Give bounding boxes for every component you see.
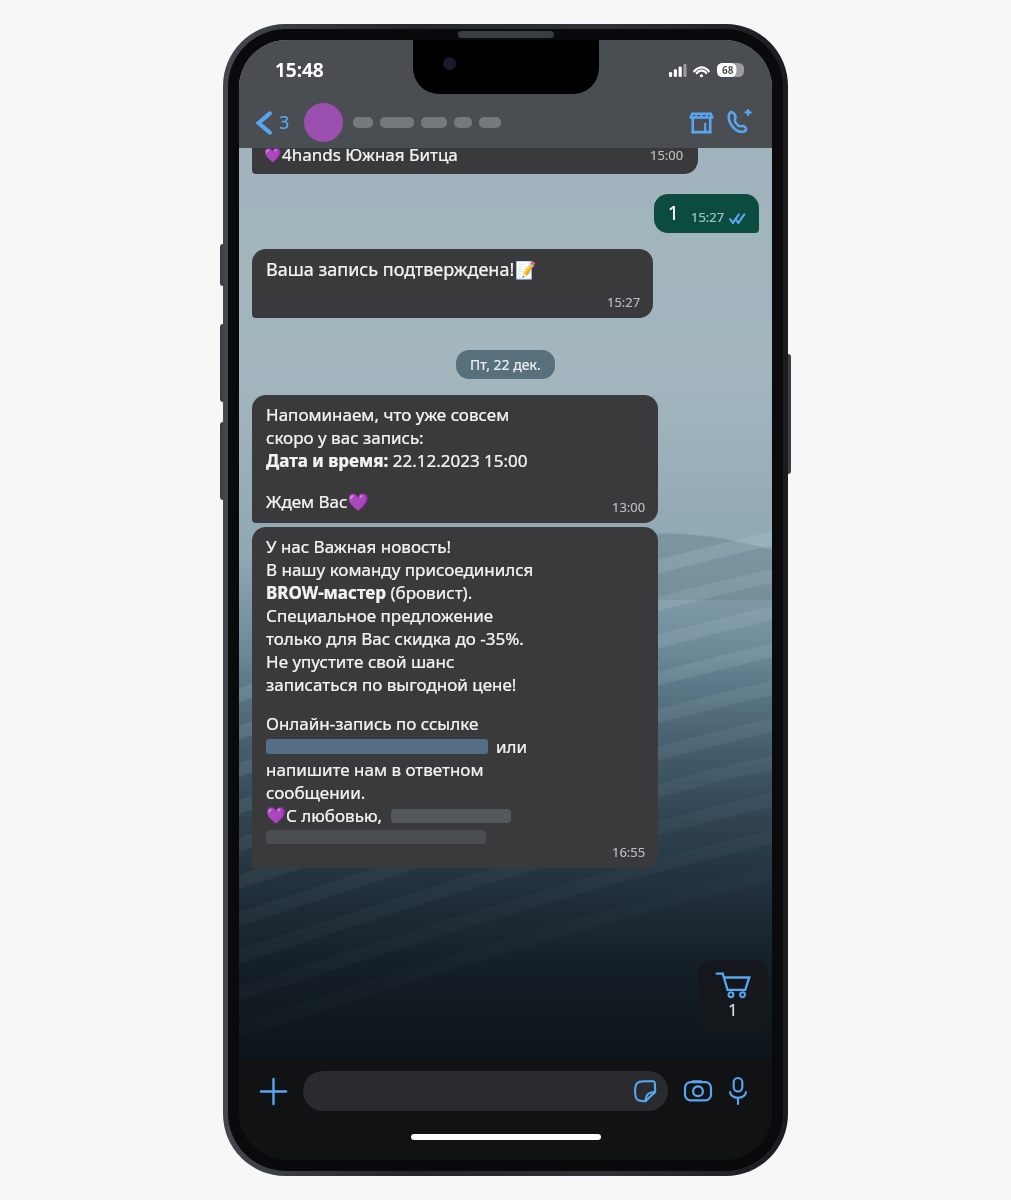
button[interactable]: 💜	[252, 148, 698, 174]
button[interactable]: Attach	[253, 1071, 293, 1111]
staticText: Пт, 22 дек.	[470, 355, 541, 374]
staticText: 15:27	[691, 208, 725, 226]
button[interactable]: Back	[253, 106, 294, 139]
button[interactable]: Напоминаем, что уже совсем скоро у вас з…	[252, 395, 658, 523]
button[interactable]: Stickers	[303, 1071, 668, 1111]
staticText: У нас Важная новость! В нашу команду при…	[266, 535, 534, 581]
staticText: 68	[722, 63, 734, 77]
staticText: 💜	[266, 806, 286, 825]
staticText: 4hands Южная Битца	[282, 148, 458, 166]
staticText: Онлайн-запись по ссылке	[266, 712, 479, 735]
staticText: 15:48	[275, 57, 324, 83]
staticText: 13:00	[612, 498, 646, 516]
button[interactable]	[353, 117, 682, 128]
staticText: BROW-мастер (бровист).	[266, 581, 473, 604]
button[interactable]: Ваша запись подтверждена!	[252, 249, 653, 318]
button[interactable]: Camera	[678, 1071, 718, 1111]
staticText: Ваша запись подтверждена!	[266, 257, 515, 282]
staticText: Напоминаем, что уже совсем скоро у вас з…	[266, 403, 510, 449]
button[interactable]: Cart	[698, 960, 768, 1032]
button[interactable]: Call	[720, 103, 758, 141]
staticText: 💜	[264, 148, 282, 163]
staticText: 1	[728, 998, 738, 1021]
other: Stickers	[632, 1078, 658, 1104]
button[interactable]: Пт, 22 дек.	[456, 350, 555, 379]
staticText: 1	[668, 200, 679, 226]
staticText: 3	[279, 110, 290, 135]
button[interactable]	[304, 103, 343, 142]
staticText: Дата и время: 22.12.2023 15:00	[266, 449, 528, 472]
button[interactable]: 1	[654, 194, 759, 233]
staticText: Специальное предложение только для Вас с…	[266, 604, 524, 696]
staticText: 15:00	[650, 148, 684, 164]
staticText: напишите нам в ответном сообщении.	[266, 758, 484, 804]
other: Back	[257, 111, 271, 135]
staticText: Ждем Вас💜	[266, 490, 369, 513]
staticText: 📝	[515, 260, 537, 280]
staticText: или	[496, 735, 528, 758]
button[interactable]: Store	[682, 103, 720, 141]
button[interactable]: Voice message	[718, 1071, 758, 1111]
staticText: С любовью,	[286, 804, 383, 827]
staticText: 16:55	[612, 843, 646, 861]
staticText: 15:27	[607, 293, 641, 311]
button[interactable]: У нас Важная новость! В нашу команду при…	[252, 527, 658, 868]
